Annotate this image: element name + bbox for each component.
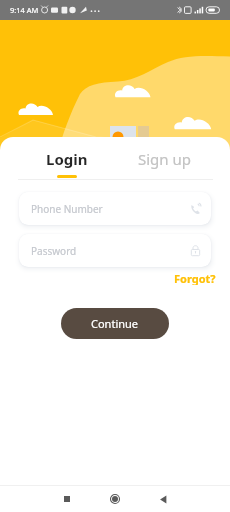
button[interactable]: Recents — [43, 486, 91, 512]
staticText: Password — [31, 244, 189, 258]
staticText: Phone Number — [31, 202, 189, 216]
staticText: 9:14 AM — [10, 5, 39, 15]
button[interactable]: Forgot? — [162, 271, 216, 285]
staticText: Login — [46, 149, 88, 169]
staticText: Forgot? — [174, 271, 216, 285]
button[interactable]: Login — [18, 149, 115, 179]
staticText: Sign up — [138, 149, 191, 169]
button[interactable]: Continue — [61, 308, 169, 339]
button[interactable]: Phone Number — [19, 192, 211, 225]
button[interactable]: Sign up — [115, 149, 213, 179]
button[interactable]: Password — [19, 234, 211, 267]
staticText: Continue — [91, 316, 139, 331]
button[interactable]: Home — [91, 486, 139, 512]
button[interactable]: Back — [139, 486, 187, 512]
